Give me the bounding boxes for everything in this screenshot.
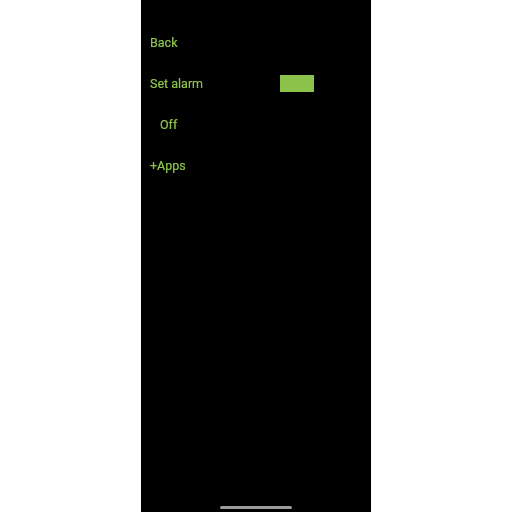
button[interactable]: Home <box>220 506 292 509</box>
button[interactable]: +Apps <box>141 149 371 181</box>
staticText: Off <box>160 117 178 132</box>
staticText: Set alarm <box>150 76 204 91</box>
button[interactable]: Set alarm <box>141 67 371 99</box>
button[interactable]: Off <box>141 108 371 140</box>
staticText: Back <box>150 35 178 50</box>
button[interactable]: Back <box>141 26 371 58</box>
staticText: +Apps <box>150 158 186 173</box>
